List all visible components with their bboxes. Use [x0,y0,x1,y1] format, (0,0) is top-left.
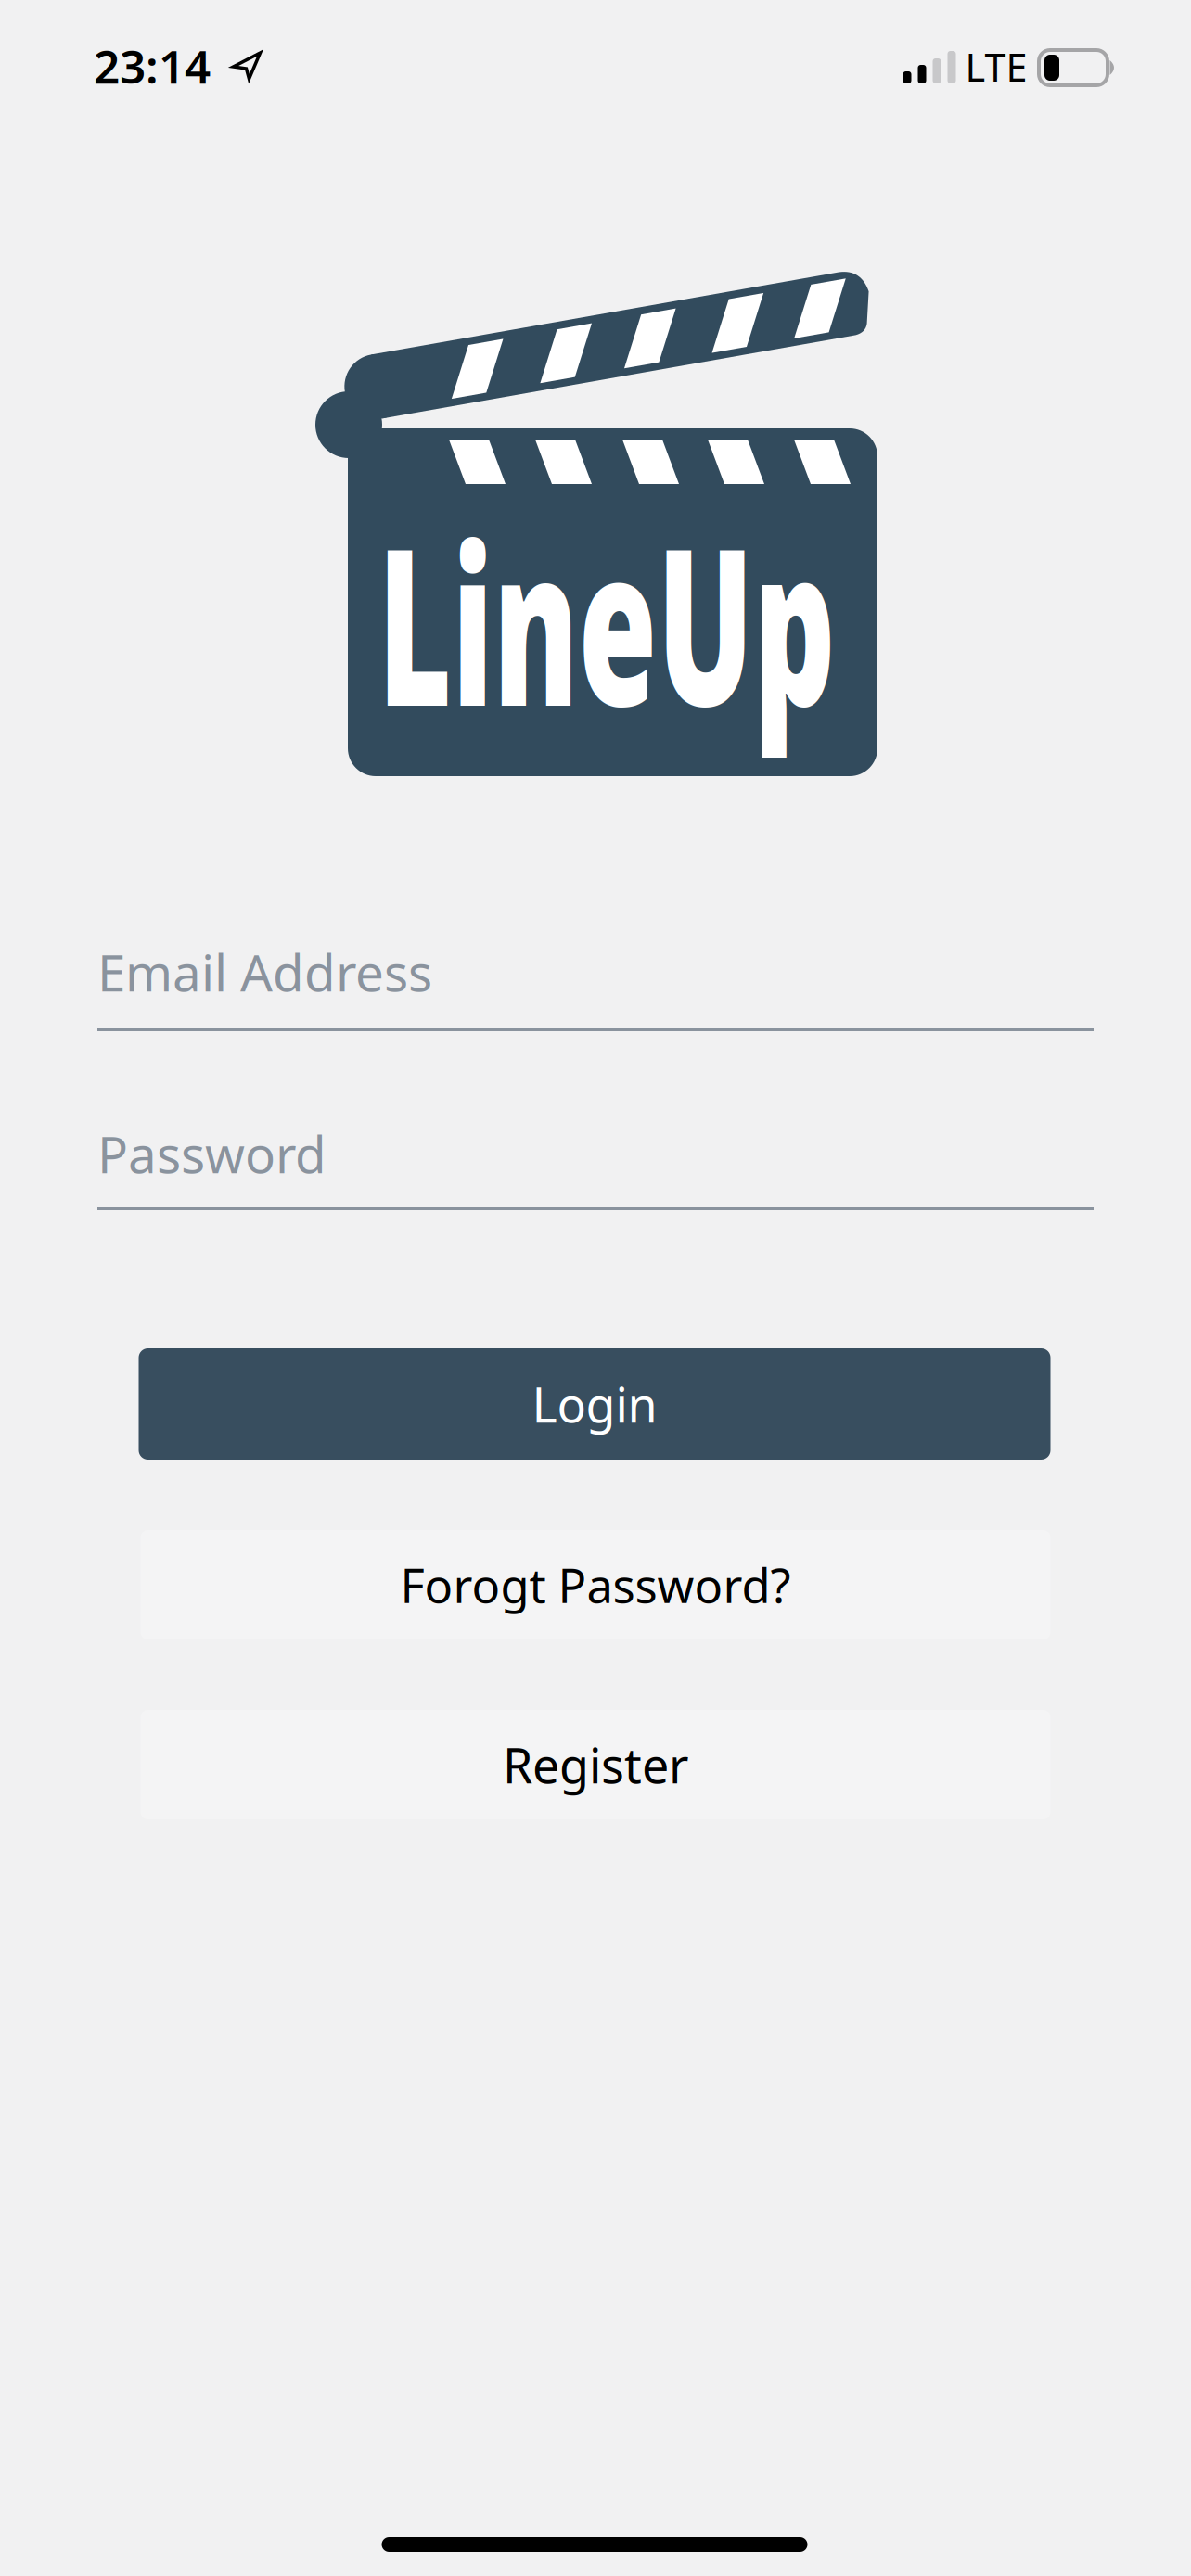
button[interactable]: Password [97,1102,1094,1210]
staticText: LineUp [215,477,998,766]
staticText: LTE [965,41,1027,92]
staticText: Password [97,1120,327,1187]
button[interactable]: Email Address [97,923,1094,1031]
staticText: Forogt Password? [400,1554,791,1616]
staticText: Register [503,1733,688,1797]
button[interactable]: Forogt Password? [141,1530,1050,1639]
staticText: Email Address [97,938,432,1005]
button[interactable]: Register [141,1710,1050,1819]
staticText: Login [532,1372,657,1436]
button[interactable]: Login [139,1348,1050,1460]
staticText: 23:14 [94,35,211,96]
